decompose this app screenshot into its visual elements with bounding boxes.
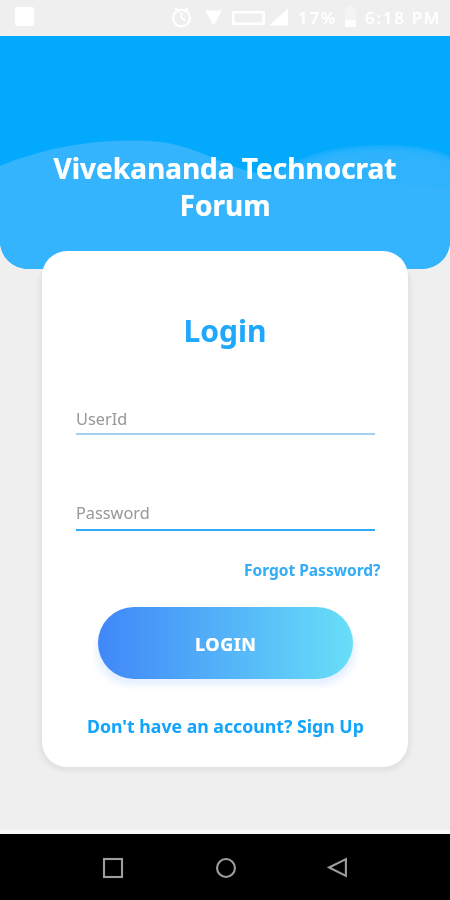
button[interactable]: LOGIN (98, 607, 353, 679)
staticText: Don't have an account? Sign Up (87, 714, 364, 738)
staticText: LOGIN (195, 632, 257, 657)
staticText: 17% (298, 6, 338, 29)
button[interactable]: Recent apps (90, 845, 135, 890)
button[interactable]: Home (203, 845, 248, 890)
button[interactable]: Forgot Password? (242, 557, 383, 582)
staticText: Vivekananda Technocrat Forum (24, 149, 426, 224)
button[interactable]: Don't have an account? Sign Up (85, 712, 366, 740)
staticText: 6:18 PM (365, 6, 442, 29)
staticText: Forgot Password? (244, 559, 381, 580)
staticText: Password (76, 502, 150, 524)
staticText: UserId (76, 408, 128, 430)
button[interactable]: Back (315, 845, 360, 890)
staticText: Login (42, 310, 408, 351)
